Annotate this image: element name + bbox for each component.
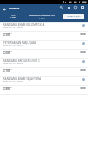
staticText: 2024-01-12 08:30 <box>3 25 23 28</box>
staticText: KANDANG AYAM KELOMPOK A <box>3 23 45 27</box>
button[interactable]: PETERNAKAN MAJU JAYA <box>0 41 88 59</box>
staticText: Total <box>11 14 16 17</box>
button[interactable]: KANDANG BROILER UNIT 2 <box>0 59 88 77</box>
button[interactable]: More options <box>79 4 86 13</box>
staticText: PETERNAKAN MAJU JAYA <box>3 41 37 45</box>
staticText: 2024-01-14 08:32 <box>3 61 23 64</box>
button[interactable]: TAMBAH DATA <box>63 14 84 19</box>
staticText: Kandang <box>9 6 20 9</box>
staticText: Populasi <box>3 68 12 71</box>
staticText: 1.250 <box>10 16 16 19</box>
staticText: Populasi <box>3 50 12 53</box>
button[interactable]: KANDANG AYAM SEJAHTERA <box>0 77 88 95</box>
staticText: 2024-01-13 08:31 <box>3 43 23 46</box>
staticText: 2.800 <box>3 87 11 91</box>
staticText: KANDANG BROILER UNIT 2 <box>3 59 40 63</box>
button[interactable]: Refresh <box>72 4 79 13</box>
button[interactable]: KANDANG AYAM KELOMPOK A <box>0 23 88 41</box>
staticText: 2024-01-15 08:33 <box>3 79 23 82</box>
button[interactable]: Search <box>58 4 65 13</box>
button[interactable]: Back <box>0 5 8 13</box>
staticText: 2.700 <box>3 69 11 73</box>
staticText: Populasi <box>3 86 12 89</box>
staticText: 4 unit <box>39 17 45 20</box>
button[interactable]: Filter <box>65 4 72 13</box>
staticText: Populasi <box>3 32 12 35</box>
staticText: 2.600 <box>3 51 11 55</box>
staticText: Kelompok Kandang A12 <box>29 14 55 17</box>
staticText: TAMBAH DATA <box>67 15 81 18</box>
staticText: 2.500 <box>3 33 11 37</box>
staticText: KANDANG AYAM SEJAHTERA <box>3 77 42 81</box>
